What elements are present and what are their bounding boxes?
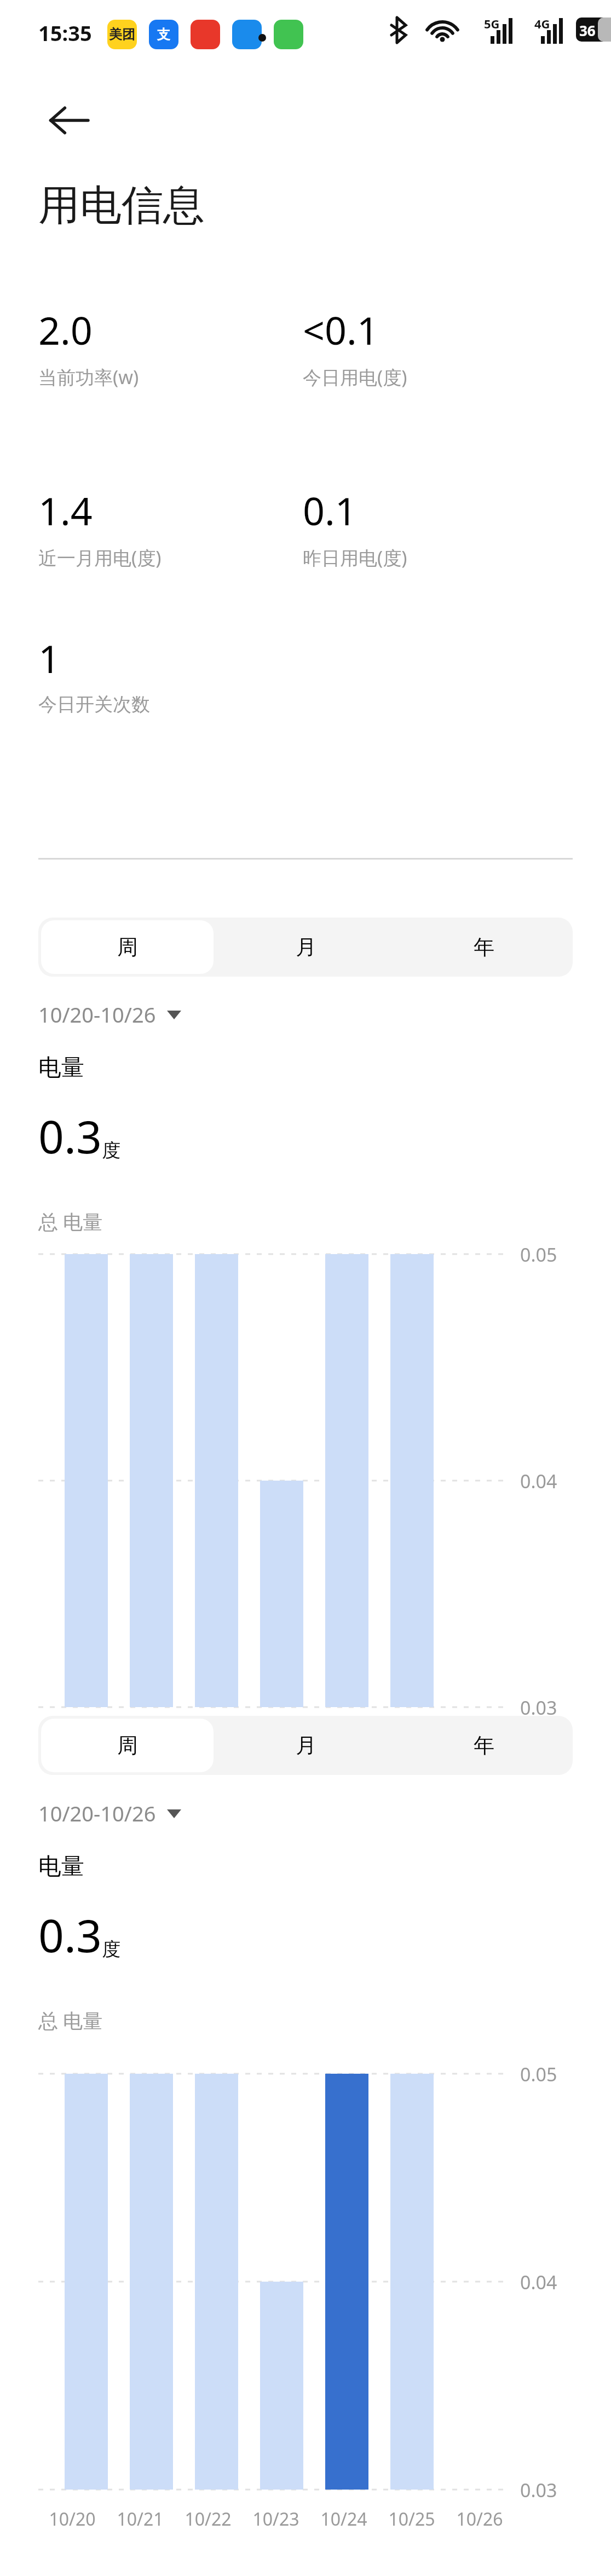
staticText: 近一月用电(度) — [38, 545, 162, 570]
staticText: 月 — [296, 1732, 316, 1759]
staticText: 36 — [579, 21, 596, 40]
staticText: 当前功率(w) — [38, 364, 139, 390]
staticText: 5G — [484, 15, 500, 32]
staticText: 0.04 — [520, 1469, 557, 1494]
staticText: 支 — [157, 26, 170, 43]
staticText: 10/20 — [49, 2507, 96, 2531]
staticText: 4G — [534, 15, 550, 32]
button[interactable]: 月 — [217, 1716, 395, 1775]
staticText: 总 电量 — [38, 1208, 103, 1235]
button[interactable] — [390, 1254, 434, 1707]
button[interactable] — [260, 2282, 303, 2490]
button[interactable]: 周 — [38, 1716, 217, 1775]
staticText: 0.03 — [520, 1695, 557, 1720]
staticText: 10/23 — [252, 2507, 299, 2531]
staticText: 10/21 — [117, 2507, 164, 2531]
staticText: 周 — [117, 934, 138, 960]
staticText: 0.05 — [520, 1242, 557, 1267]
staticText: 0.05 — [520, 2062, 557, 2087]
staticText: <0.1 — [303, 304, 379, 356]
staticText: 今日开关次数 — [38, 693, 150, 716]
button[interactable] — [325, 2074, 368, 2490]
staticText: 10/20-10/26 — [38, 1000, 156, 1029]
staticText: 月 — [296, 934, 316, 960]
staticText: 10/22 — [185, 2507, 232, 2531]
button[interactable]: 周 — [38, 918, 217, 977]
staticText: 1 — [38, 632, 61, 684]
button[interactable] — [260, 1481, 303, 1707]
staticText: 10/26 — [456, 2507, 503, 2531]
staticText: 0.03 — [520, 2478, 557, 2503]
button[interactable]: 月 — [217, 918, 395, 977]
staticText: 0.04 — [520, 2270, 557, 2295]
staticText: 周 — [117, 1732, 138, 1759]
button[interactable]: 年 — [395, 1716, 573, 1775]
staticText: 0.1 — [303, 484, 357, 536]
staticText: 年 — [474, 934, 494, 960]
staticText: 度 — [102, 1937, 120, 1961]
staticText: 10/25 — [388, 2507, 435, 2531]
button[interactable] — [390, 2074, 434, 2490]
staticText: 电量 — [38, 1852, 84, 1881]
button[interactable]: Back — [43, 94, 95, 147]
staticText: 度 — [102, 1139, 120, 1162]
button[interactable]: 10/20-10/26 — [38, 1799, 181, 1827]
staticText: 今日用电(度) — [303, 364, 407, 390]
staticText: 1.4 — [38, 484, 93, 536]
staticText: 10/24 — [320, 2507, 367, 2531]
staticText: 美团 — [109, 26, 135, 43]
staticText: 昨日用电(度) — [303, 545, 407, 570]
staticText: 2.0 — [38, 304, 93, 356]
staticText: 15:35 — [38, 19, 92, 47]
button[interactable]: 年 — [395, 918, 573, 977]
staticText: 年 — [474, 1732, 494, 1759]
staticText: 10/20-10/26 — [38, 1799, 156, 1827]
staticText: 电量 — [38, 1053, 84, 1082]
button[interactable] — [325, 1254, 368, 1707]
button[interactable]: 10/20-10/26 — [38, 1000, 181, 1029]
staticText: 0.3 — [38, 1105, 102, 1167]
staticText: 总 电量 — [38, 2007, 103, 2034]
staticText: 0.3 — [38, 1904, 102, 1965]
staticText: 用电信息 — [38, 179, 205, 232]
